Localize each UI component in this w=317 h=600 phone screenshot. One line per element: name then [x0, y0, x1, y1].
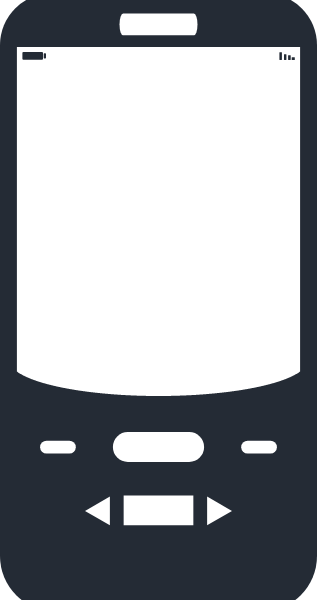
button[interactable]: Mobile phone: [0, 0, 317, 600]
